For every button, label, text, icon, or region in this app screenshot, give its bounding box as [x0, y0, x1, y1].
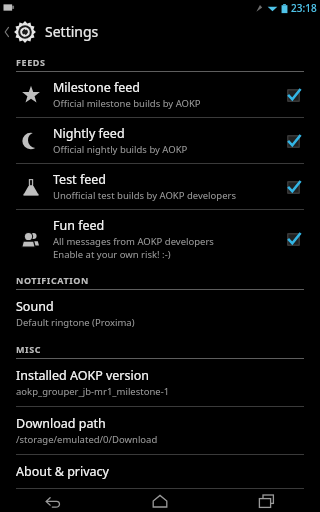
staticText: NOTIFICATION [16, 274, 90, 286]
staticText: Download path [16, 415, 106, 432]
staticText: FEEDS [16, 56, 46, 68]
staticText: Default ringtone (Proxima) [16, 316, 135, 329]
staticText: Official nightly builds by AOKP [53, 143, 188, 156]
button[interactable]: About & privacy [0, 455, 320, 488]
button[interactable]: Milestone feed [0, 72, 320, 117]
staticText: About & privacy [16, 463, 109, 480]
button[interactable]: Test feed toggle [280, 174, 306, 200]
staticText: /storage/emulated/0/Download [16, 433, 158, 446]
staticText: 23:18 [291, 1, 317, 15]
button[interactable]: Nightly feed [0, 118, 320, 163]
button[interactable]: Nightly feed toggle [280, 128, 306, 154]
button[interactable]: Fun feed [0, 210, 320, 268]
staticText: Enable at your own risk! :-) [53, 248, 171, 261]
button[interactable]: Download path [0, 407, 320, 454]
staticText: Sound [16, 298, 54, 315]
button[interactable]: Recent apps [213, 489, 320, 512]
staticText: Installed AOKP version [16, 367, 150, 384]
staticText: aokp_grouper_jb-mr1_milestone-1 [16, 385, 170, 398]
button[interactable]: Fun feed toggle [280, 226, 306, 252]
button[interactable]: Milestone feed toggle [280, 82, 306, 108]
button[interactable]: Sound [0, 290, 320, 337]
staticText: Settings [45, 22, 99, 41]
button[interactable]: Installed AOKP version [0, 359, 320, 406]
button[interactable]: Back [0, 15, 320, 48]
staticText: Nightly feed [53, 125, 125, 142]
other: Back [4, 26, 10, 38]
staticText: MISC [16, 343, 42, 355]
staticText: Official milestone builds by AOKP [53, 97, 201, 110]
button[interactable]: Back [0, 489, 106, 512]
staticText: All messages from AOKP developers [53, 235, 214, 248]
staticText: Milestone feed [53, 79, 141, 96]
button[interactable]: Home [106, 489, 213, 512]
button[interactable]: Test feed [0, 164, 320, 209]
staticText: Unofficial test builds by AOKP developer… [53, 189, 236, 202]
staticText: Fun feed [53, 217, 105, 234]
staticText: Test feed [53, 171, 106, 188]
